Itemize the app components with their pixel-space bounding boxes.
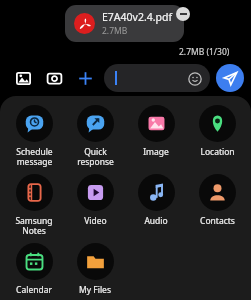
staticText: Audio	[144, 215, 168, 227]
button[interactable]: Audio	[126, 174, 186, 227]
staticText: 2.7MB	[102, 25, 128, 37]
staticText: Image	[143, 146, 169, 158]
button[interactable]: Samsung Notes	[4, 174, 64, 237]
staticText: Schedule message	[16, 146, 53, 168]
staticText: 2.7MB (1/30)	[179, 46, 230, 58]
button[interactable]: Camera	[42, 66, 66, 90]
button[interactable]: Quick response	[65, 105, 125, 168]
button[interactable]: Schedule message	[4, 105, 64, 168]
button[interactable]: Contacts	[187, 174, 247, 227]
button[interactable]: Remove attachment	[176, 7, 190, 21]
button[interactable]: Calendar	[4, 243, 64, 296]
button[interactable]: Location	[187, 105, 247, 158]
button[interactable]: Image	[126, 105, 186, 158]
button[interactable]: More options	[73, 66, 97, 90]
button[interactable]: Video	[65, 174, 125, 227]
other: Emoji	[187, 71, 202, 86]
staticText: Location	[200, 146, 235, 158]
staticText: Quick response	[77, 146, 114, 168]
staticText: Calendar	[16, 284, 52, 296]
staticText: My Files	[79, 284, 111, 296]
staticText: Contacts	[200, 215, 235, 227]
staticText: Samsung Notes	[15, 215, 53, 237]
staticText: E7A40v2.4.pdf	[102, 10, 173, 24]
button[interactable]: Gallery	[11, 66, 35, 90]
button[interactable]: Send	[216, 64, 244, 92]
button[interactable]: My Files	[65, 243, 125, 296]
staticText: Video	[84, 215, 107, 227]
button[interactable]: Emoji	[104, 64, 210, 92]
button[interactable]: E7A40v2.4.pdf	[65, 5, 184, 42]
